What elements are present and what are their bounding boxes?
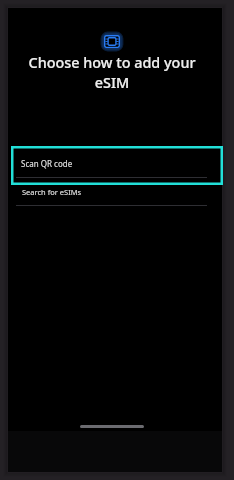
button[interactable]: Search for eSIMs	[16, 185, 215, 206]
other: eSIM	[104, 35, 120, 48]
staticText: Scan QR code	[21, 158, 73, 169]
staticText: Search for eSIMs	[22, 187, 82, 197]
button[interactable]: Scan QR code	[11, 146, 223, 185]
staticText: Choose how to add your eSIM	[19, 53, 205, 93]
